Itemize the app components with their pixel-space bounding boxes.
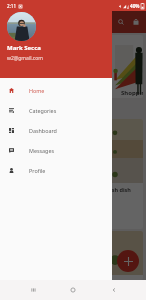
button[interactable]: Open navigation drawer [4, 16, 16, 28]
button[interactable]: Shopping [3, 35, 143, 98]
button[interactable]: Home [0, 80, 112, 100]
button[interactable]: Home [65, 282, 81, 298]
button[interactable] [3, 231, 143, 280]
button[interactable]: Search [115, 16, 127, 28]
button[interactable]: Add [117, 250, 139, 272]
staticText: 2:11 [7, 3, 17, 9]
staticText: Mark Secca [7, 44, 41, 52]
button[interactable]: Fresh dish [3, 119, 143, 229]
staticText: Fresh dish [103, 186, 131, 193]
staticText: Profile [29, 167, 46, 174]
button[interactable]: Back [106, 282, 122, 298]
button[interactable]: Shopping cart [130, 16, 142, 28]
staticText: Dashboard [29, 127, 57, 134]
button[interactable]: Categories [0, 100, 112, 120]
staticText: w2@gmail.com [7, 55, 43, 62]
staticText: Home [29, 87, 45, 94]
button[interactable]: Recent apps [25, 282, 41, 298]
staticText: Categories [29, 107, 57, 114]
staticText: 40% [130, 3, 140, 9]
button[interactable]: Dashboard [0, 120, 112, 140]
button[interactable]: Messages [0, 140, 112, 160]
staticText: Shopping [121, 89, 143, 97]
button[interactable]: Profile photo [7, 12, 36, 41]
staticText: Messages [29, 147, 55, 154]
button[interactable]: Profile [0, 160, 112, 180]
